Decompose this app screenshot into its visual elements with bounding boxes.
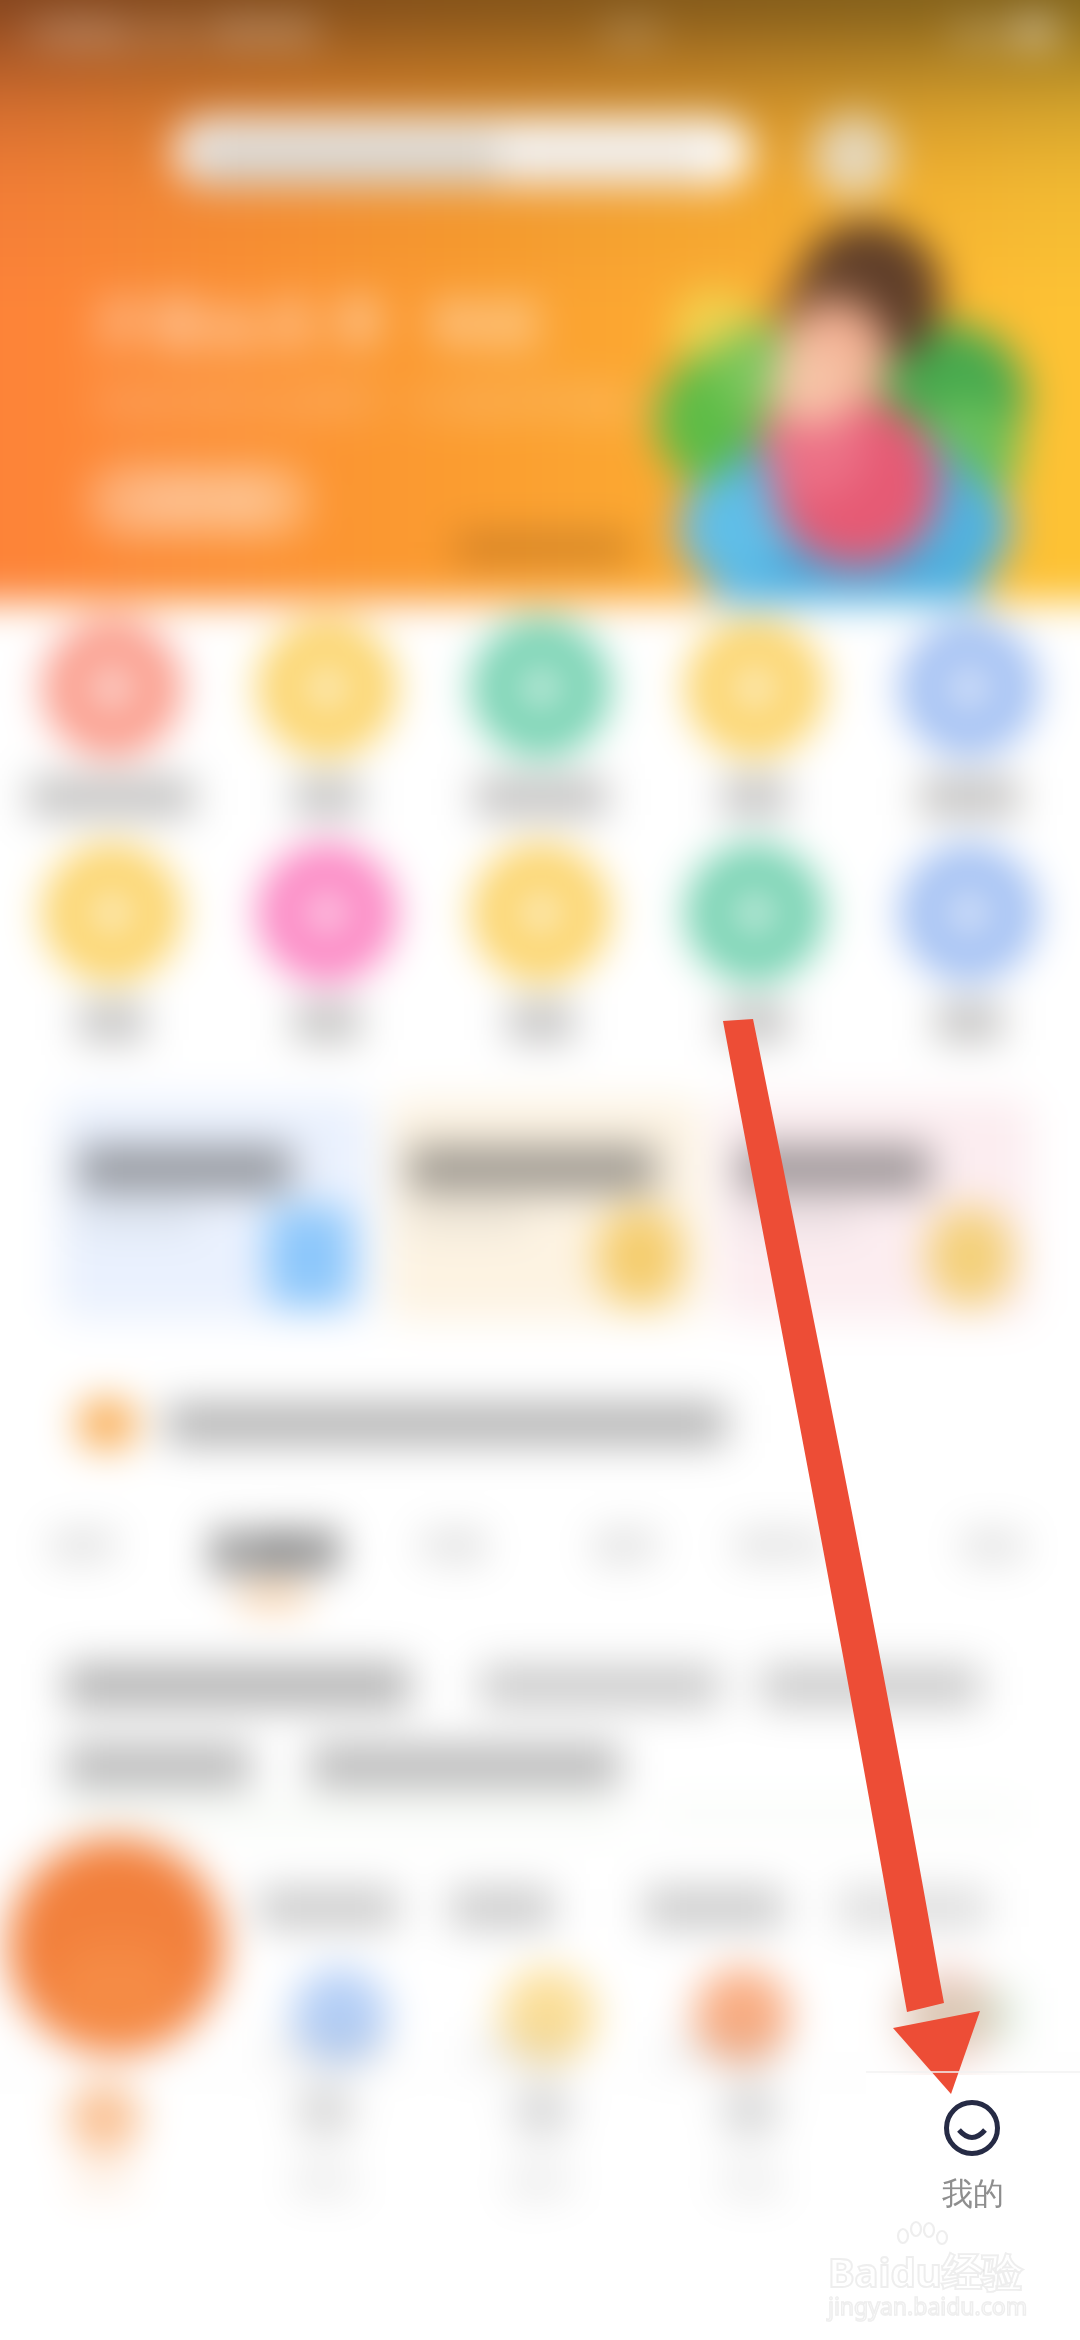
button[interactable]: 直播课 (188, 1526, 358, 1630)
button[interactable] (58, 1098, 372, 1320)
staticText: 直播课 (207, 1526, 339, 1581)
button[interactable]: 题库 (557, 1526, 697, 1630)
staticText: 立即开通 (135, 481, 263, 521)
button[interactable]: Profile (812, 114, 896, 198)
staticText: 开通会员 享 特权 (92, 285, 543, 361)
button[interactable] (718, 1098, 1032, 1320)
button[interactable] (174, 118, 752, 186)
button[interactable] (434, 845, 648, 1041)
button[interactable]: 推荐 (14, 1526, 154, 1630)
button[interactable]: 消息 (645, 2082, 855, 2242)
staticText: 85% (954, 14, 1006, 49)
button[interactable] (78, 1400, 726, 1448)
staticText: 我的 (942, 2174, 1004, 2213)
button[interactable] (648, 845, 862, 1041)
staticText: 首页 (72, 2160, 136, 2200)
button[interactable] (4, 845, 219, 1041)
staticText: 资料库 (734, 1526, 830, 1566)
staticText: 9:41 (607, 12, 663, 50)
button[interactable]: 课程 (220, 2082, 430, 2242)
staticText: 中国移动 5G (26, 12, 189, 50)
button[interactable] (4, 620, 219, 816)
staticText: jingyan.baidu.com (828, 2290, 1028, 2321)
staticText: Baidu经验 (828, 2244, 1022, 2299)
button[interactable]: 资料库 (712, 1526, 852, 1630)
button[interactable] (388, 1098, 702, 1320)
button[interactable] (862, 845, 1076, 1041)
button[interactable]: 首页 (0, 2082, 209, 2242)
button[interactable]: 立即开通 (88, 464, 310, 538)
button[interactable]: 我的 Profile tab (866, 2075, 1080, 2265)
button[interactable]: 题库 (437, 2082, 647, 2242)
button[interactable]: 录播 (382, 1526, 522, 1630)
button[interactable] (862, 620, 1076, 816)
staticText: 海量课程免费学 专属资料随心下载 (92, 372, 744, 429)
button[interactable] (8, 1838, 224, 2054)
button[interactable] (648, 620, 862, 816)
button[interactable] (219, 620, 434, 816)
button[interactable] (219, 845, 434, 1041)
button[interactable] (434, 620, 648, 816)
button[interactable]: 更多 (925, 1526, 1065, 1630)
